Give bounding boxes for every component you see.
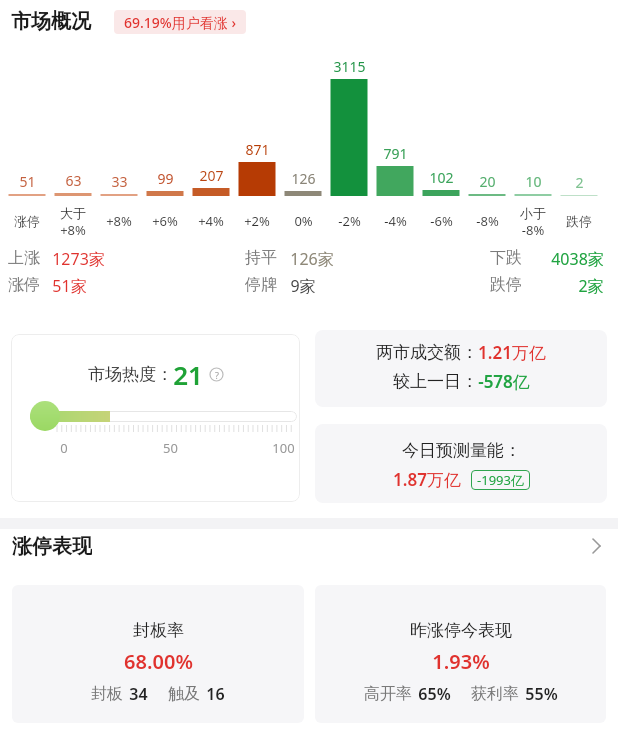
staticText: 51 <box>19 172 36 189</box>
staticText: 34 <box>129 683 148 705</box>
staticText: 较上一日： <box>393 371 478 392</box>
staticText: 0% <box>294 212 313 230</box>
staticText: +6% <box>152 212 178 230</box>
staticText: 2家 <box>578 275 604 294</box>
staticText: +4% <box>198 212 224 230</box>
staticText: 两市成交额： <box>376 342 478 363</box>
staticText: 207 <box>199 166 224 183</box>
staticText: -6% <box>430 212 453 230</box>
button[interactable] <box>586 536 606 556</box>
staticText: 4038家 <box>551 248 604 267</box>
staticText: 涨停 <box>14 213 40 229</box>
staticText: 126 <box>291 169 316 186</box>
staticText: 100 <box>272 439 295 456</box>
staticText: 市场概况 <box>11 9 91 34</box>
staticText: 高开率 <box>364 684 412 704</box>
staticText: +2% <box>244 212 270 230</box>
staticText: 33 <box>111 172 128 189</box>
button[interactable]: 今日预测量能： <box>315 424 607 503</box>
staticText: 今日预测量能： <box>402 440 521 461</box>
staticText: 10 <box>525 172 542 189</box>
staticText: 102 <box>429 168 454 185</box>
staticText: 1273家 <box>52 248 105 267</box>
button[interactable]: 69.19%用户看涨 › <box>114 10 246 34</box>
staticText: 55% <box>525 683 558 705</box>
staticText: 持平 <box>245 248 277 267</box>
staticText: +8% <box>106 212 132 230</box>
staticText: 2 <box>575 173 584 190</box>
staticText: 21 <box>173 357 203 392</box>
staticText: 涨停表现 <box>12 534 92 558</box>
staticText: 69.19%用户看涨 › <box>124 13 236 32</box>
staticText: 跌停 <box>490 275 522 294</box>
staticText: 昨涨停今表现 <box>410 620 512 641</box>
staticText: 871 <box>245 140 270 157</box>
staticText: -4% <box>384 212 407 230</box>
button[interactable]: 封板率 <box>12 585 304 723</box>
staticText: 触及 <box>168 684 200 704</box>
staticText: 上涨 <box>8 248 40 267</box>
staticText: -578亿 <box>478 370 530 393</box>
button[interactable]: 两市成交额： <box>315 330 607 407</box>
staticText: 99 <box>157 169 174 186</box>
staticText: 1.87万亿 <box>393 468 461 491</box>
staticText: 65% <box>418 683 451 705</box>
staticText: -8% <box>476 212 499 230</box>
staticText: 63 <box>65 171 82 188</box>
staticText: 下跌 <box>490 248 522 267</box>
staticText: 9家 <box>290 275 316 294</box>
staticText: 3115 <box>333 57 366 74</box>
staticText: 1.93% <box>432 648 490 675</box>
staticText: 16 <box>206 683 225 705</box>
staticText: 1.21万亿 <box>478 341 546 364</box>
staticText: 市场热度： <box>88 364 173 385</box>
staticText: 51家 <box>52 275 87 294</box>
staticText: 50 <box>163 439 178 456</box>
staticText: 大于 +8% <box>60 205 86 238</box>
staticText: 126家 <box>290 248 334 267</box>
button[interactable]: 市场热度： <box>11 334 300 502</box>
staticText: 0 <box>60 439 68 456</box>
staticText: -1993亿 <box>477 471 524 489</box>
staticText: 791 <box>383 144 408 161</box>
staticText: 封板率 <box>133 620 184 641</box>
staticText: -2% <box>338 212 361 230</box>
staticText: 封板 <box>91 684 123 704</box>
staticText: 小于 -8% <box>520 205 546 238</box>
staticText: 68.00% <box>124 648 193 675</box>
staticText: 涨停 <box>8 275 40 294</box>
staticText: 获利率 <box>471 684 519 704</box>
staticText: 20 <box>479 172 496 189</box>
staticText: ? <box>215 369 219 381</box>
staticText: 停牌 <box>245 275 277 294</box>
button[interactable]: 昨涨停今表现 <box>315 585 606 723</box>
staticText: 跌停 <box>566 213 592 229</box>
